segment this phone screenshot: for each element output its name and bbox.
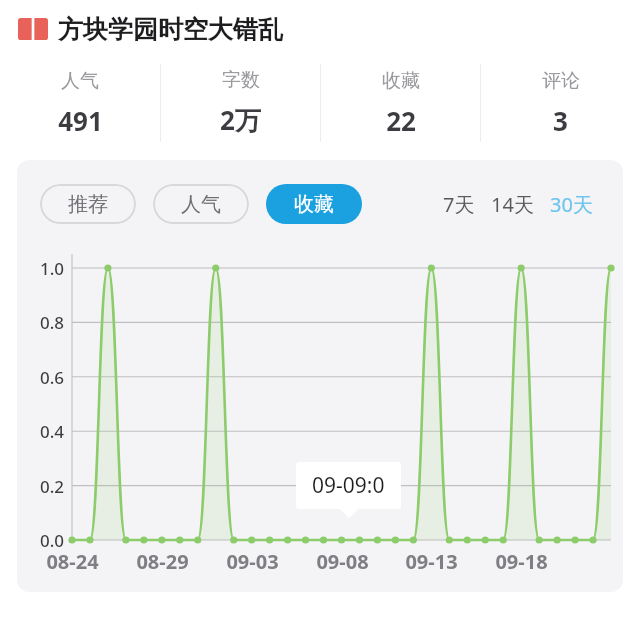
staticText: 收藏 [382,69,420,93]
staticText: 08-24 [46,548,99,575]
staticText: 0.4 [40,420,65,443]
button[interactable]: 7天 [439,187,479,222]
staticText: 14天 [491,191,534,218]
staticText: 30天 [550,191,593,218]
staticText: 字数 [222,68,260,92]
staticText: 3 [553,103,568,138]
button[interactable]: 人气 [153,184,249,224]
staticText: 0.2 [40,475,65,498]
staticText: 1.0 [40,257,65,280]
staticText: 0.6 [40,366,65,389]
other: Book [18,18,48,40]
button[interactable]: 14天 [487,187,538,222]
staticText: 09-09:0 [312,471,385,500]
staticText: 22 [386,103,416,138]
staticText: 09-18 [495,548,548,575]
staticText: 0.0 [40,529,65,552]
staticText: 491 [58,103,103,138]
button[interactable]: 30天 [546,187,597,222]
staticText: 09-13 [405,548,458,575]
button[interactable]: 收藏 [266,184,362,224]
staticText: 评论 [542,69,580,93]
staticText: 方块学园时空大错乱 [58,14,283,45]
staticText: 0.8 [40,311,65,334]
button[interactable]: 推荐 [40,184,136,224]
staticText: 7天 [443,191,475,218]
staticText: 人气 [181,192,221,217]
staticText: 推荐 [68,192,108,217]
staticText: 09-08 [316,548,369,575]
staticText: 收藏 [294,192,334,217]
staticText: 2万 [220,102,261,138]
staticText: 09-03 [226,548,279,575]
staticText: 人气 [61,69,99,93]
staticText: 08-29 [136,548,189,575]
